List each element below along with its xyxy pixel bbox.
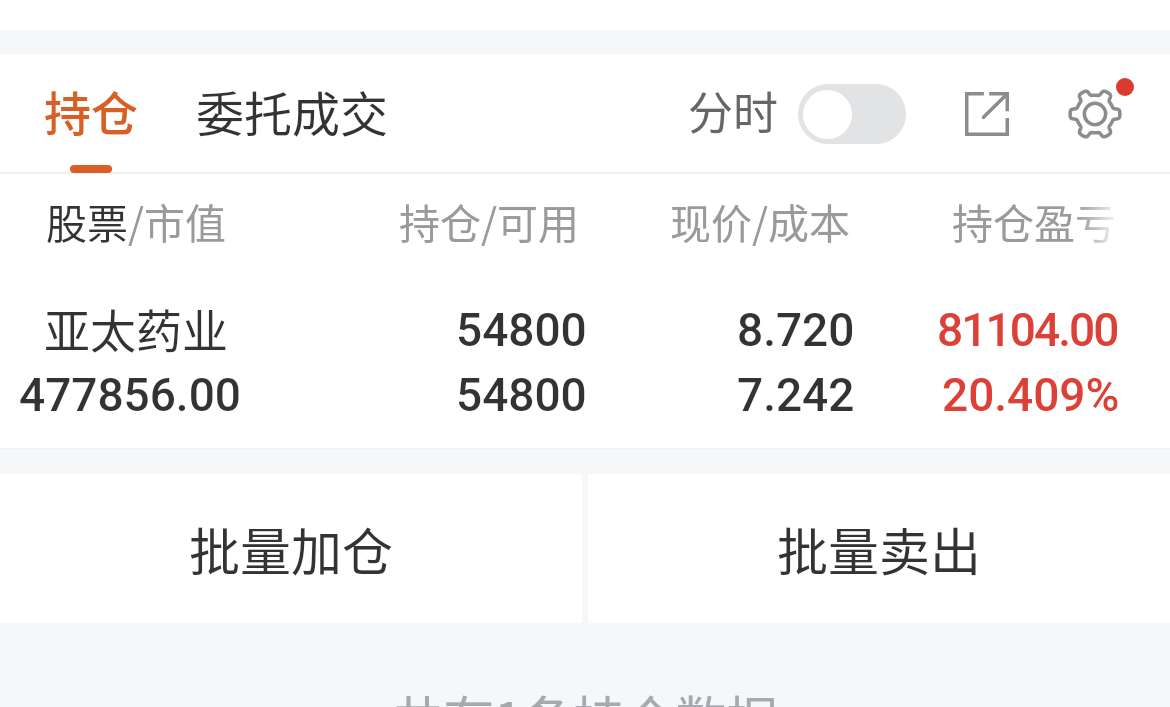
button[interactable]: 亚太药业 持仓明细	[0, 259, 1170, 448]
button[interactable]: 委托成交	[187, 70, 398, 152]
staticText: 委托成交	[196, 76, 389, 146]
staticText: 股票	[46, 191, 128, 250]
button[interactable]: 持仓	[35, 70, 147, 150]
staticText: 共有1条持仓数据	[392, 680, 778, 707]
button[interactable]: Open in new window	[955, 82, 1019, 146]
staticText: 持仓/可用	[399, 191, 580, 250]
staticText: 批量加仓	[189, 512, 394, 586]
staticText: 477856.00	[19, 368, 241, 422]
staticText: 持仓	[44, 76, 138, 144]
staticText: 持仓盈亏	[952, 191, 1116, 250]
button[interactable]: Settings	[1063, 82, 1127, 146]
staticText: 分时	[688, 78, 779, 143]
button[interactable]: 批量加仓	[0, 474, 582, 623]
staticText: /市值	[128, 191, 227, 250]
staticText: 批量卖出	[777, 512, 982, 586]
staticText: 81104.00	[937, 303, 1118, 357]
button[interactable]: Toggle time-share chart	[798, 84, 906, 144]
staticText: 8.720	[737, 303, 855, 357]
staticText: 亚太药业	[44, 295, 228, 362]
staticText: 7.242	[737, 368, 855, 422]
staticText: 20.409%	[942, 368, 1120, 422]
staticText: 现价/成本	[670, 191, 851, 250]
staticText: 54800	[456, 368, 587, 422]
staticText: 54800	[456, 303, 587, 357]
button[interactable]: 分时	[680, 72, 787, 149]
button[interactable]: 批量卖出	[588, 474, 1170, 623]
